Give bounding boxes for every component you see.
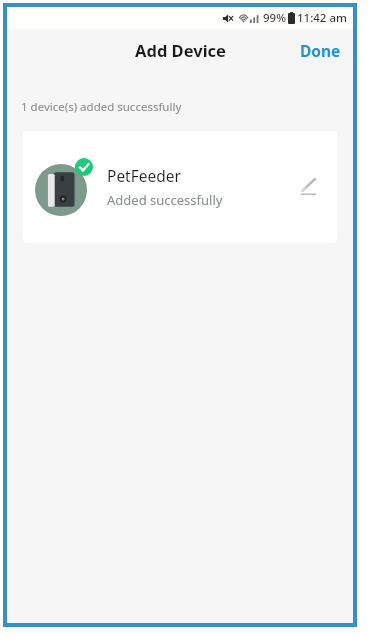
staticText: Done — [300, 40, 341, 61]
staticText: Add Device — [135, 39, 226, 61]
staticText: 1 device(s) added successfully — [21, 99, 182, 115]
staticText: 11:42 am — [297, 10, 347, 26]
button[interactable]: Done — [288, 32, 353, 69]
staticText: 99% — [263, 10, 286, 26]
button[interactable]: PetFeeder — [23, 131, 337, 243]
staticText: PetFeeder — [107, 165, 181, 186]
staticText: Added successfully — [107, 191, 223, 209]
button[interactable]: Rename device — [291, 169, 327, 205]
